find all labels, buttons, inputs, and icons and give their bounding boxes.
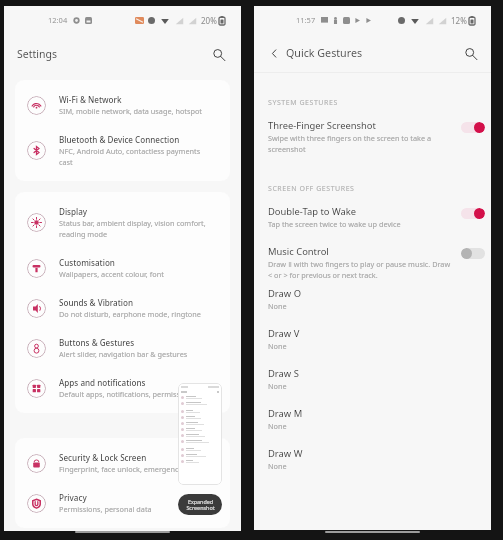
button[interactable]: Draw V — [254, 321, 491, 361]
staticText: Buttons & Gestures — [59, 337, 135, 348]
staticText: Wi-Fi & Network — [59, 94, 122, 105]
staticText: 12% — [451, 15, 467, 26]
staticText: Customisation — [59, 257, 115, 268]
staticText: Alert slider, navigation bar & gestures — [59, 349, 188, 359]
button[interactable]: Customisation — [15, 248, 230, 288]
staticText: Bluetooth & Device Connection — [59, 134, 180, 145]
button[interactable]: Toggle — [461, 208, 485, 219]
button[interactable]: Screenshot preview — [178, 383, 222, 485]
button[interactable]: Expanded Screenshot — [178, 494, 222, 515]
staticText: Three-Finger Screenshot — [268, 119, 376, 132]
staticText: Settings — [17, 47, 57, 61]
staticText: Status bar, ambient display, vision comf… — [59, 218, 206, 239]
button[interactable]: Draw W — [254, 441, 491, 481]
button[interactable]: Wi-Fi & Network — [15, 85, 230, 125]
staticText: Default apps, notifications, permissions — [59, 389, 195, 399]
button[interactable]: Music Control — [254, 244, 491, 281]
staticText: Swipe with three fingers on the screen t… — [268, 133, 431, 154]
staticText: Draw O — [268, 287, 301, 300]
staticText: Draw M — [268, 407, 303, 420]
staticText: Draw ǁ with two fingers to play or pause… — [268, 259, 451, 280]
staticText: None — [268, 421, 287, 431]
staticText: Draw S — [268, 367, 299, 380]
staticText: Draw V — [268, 327, 300, 340]
button[interactable]: Privacy — [15, 483, 230, 523]
staticText: Draw W — [268, 447, 303, 460]
staticText: Tap the screen twice to wake up device — [268, 219, 401, 229]
button[interactable]: Apps and notifications — [15, 368, 230, 408]
button[interactable]: Security & Lock Screen — [15, 443, 230, 483]
button[interactable]: Three-Finger Screenshot — [254, 118, 491, 155]
staticText: Expanded Screenshot — [186, 498, 215, 512]
staticText: None — [268, 461, 287, 471]
staticText: Double-Tap to Wake — [268, 205, 357, 218]
staticText: Music Control — [268, 245, 329, 258]
button[interactable]: Sounds & Vibration — [15, 288, 230, 328]
button[interactable]: Search — [460, 43, 480, 63]
button[interactable]: Back — [265, 44, 283, 62]
button[interactable]: Draw O — [254, 281, 491, 321]
button[interactable]: Search — [208, 44, 228, 64]
button[interactable]: Display — [15, 197, 230, 248]
staticText: Security & Lock Screen — [59, 452, 147, 463]
staticText: 12:04 — [48, 15, 68, 25]
staticText: 11:57 — [296, 15, 316, 25]
staticText: SIM, mobile network, data usage, hotspot — [59, 106, 202, 116]
button[interactable]: Buttons & Gestures — [15, 328, 230, 368]
button[interactable]: Bluetooth & Device Connection — [15, 125, 230, 176]
button[interactable]: Draw S — [254, 361, 491, 401]
staticText: 20% — [201, 15, 217, 26]
staticText: SYSTEM GESTURES — [268, 98, 338, 108]
staticText: Permissions, personal data — [59, 504, 152, 514]
button[interactable]: Double-Tap to Wake — [254, 204, 491, 230]
staticText: Apps and notifications — [59, 377, 146, 388]
staticText: None — [268, 381, 287, 391]
staticText: Fingerprint, face unlock, emergency — [59, 464, 183, 474]
staticText: None — [268, 301, 287, 311]
staticText: None — [268, 341, 287, 351]
staticText: SCREEN OFF GESTURES — [268, 184, 355, 194]
staticText: NFC, Android Auto, contactless payments … — [59, 146, 201, 167]
staticText: Sounds & Vibration — [59, 297, 134, 308]
staticText: Privacy — [59, 492, 87, 503]
button[interactable]: Toggle — [461, 248, 485, 259]
staticText: Do not disturb, earphone mode, ringtone — [59, 309, 201, 319]
staticText: Wallpapers, accent colour, font — [59, 269, 164, 279]
button[interactable]: Toggle — [461, 122, 485, 133]
staticText: Quick Gestures — [286, 46, 363, 61]
button[interactable]: Draw M — [254, 401, 491, 441]
staticText: Display — [59, 206, 88, 217]
